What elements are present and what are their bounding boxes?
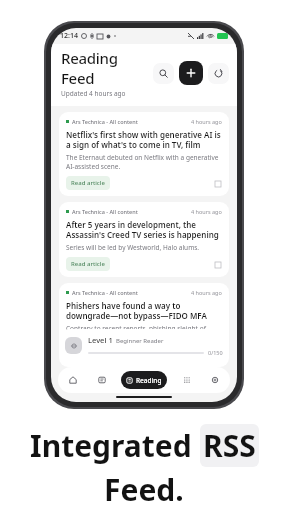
staticText: Level 1 — [88, 335, 113, 345]
staticText: 4 hours ago — [191, 208, 222, 215]
staticText: Beginner Reader — [116, 337, 164, 345]
staticText: Contrary to recent reports, phishing sle… — [66, 324, 209, 342]
button[interactable]: Bookmark — [213, 260, 222, 269]
button[interactable]: Refresh — [208, 63, 229, 84]
staticText: 12:14 — [60, 31, 78, 41]
button[interactable]: Search — [153, 63, 174, 84]
staticText: The Eternaut debuted on Netflix with a g… — [66, 153, 219, 171]
button[interactable]: Bookmark — [213, 350, 222, 359]
staticText: Reading Feed — [61, 48, 153, 88]
button[interactable]: Home — [64, 371, 82, 389]
button[interactable]: Reading — [121, 371, 167, 389]
button[interactable]: Level 1 — [59, 329, 229, 362]
button[interactable]: Add feed — [179, 61, 203, 85]
button[interactable]: Ars Technica - All content — [59, 283, 229, 367]
staticText: Netflix's first show with generative AI … — [66, 129, 222, 150]
button[interactable]: Read article — [66, 347, 110, 361]
button[interactable]: Settings — [206, 371, 224, 389]
staticText: Reading — [136, 376, 162, 385]
button[interactable]: Read article — [66, 176, 110, 190]
button[interactable]: Ars Technica - All content — [59, 202, 229, 277]
staticText: Ars Technica - All content — [72, 208, 138, 215]
staticText: Phishers have found a way to downgrade—n… — [66, 300, 222, 321]
staticText: Ars Technica - All content — [72, 289, 138, 296]
button[interactable]: Read article — [66, 257, 110, 271]
staticText: Feed. — [104, 469, 184, 510]
button[interactable]: Categories — [178, 371, 196, 389]
staticText: Read article — [71, 179, 105, 187]
staticText: Read article — [71, 260, 105, 268]
staticText: 4 hours ago — [191, 118, 222, 125]
staticText: Series will be led by Westworld, Halo al… — [66, 243, 200, 252]
staticText: RSS — [203, 425, 256, 466]
staticText: Ars Technica - All content — [72, 118, 138, 125]
button[interactable]: Bookmark — [213, 179, 222, 188]
staticText: 4 hours ago — [191, 289, 222, 296]
button[interactable]: Articles — [93, 371, 111, 389]
staticText: After 5 years in development, the Assass… — [66, 219, 222, 240]
button[interactable]: Ars Technica - All content — [59, 112, 229, 196]
staticText: Updated 4 hours ago — [61, 89, 126, 98]
staticText: Read article — [71, 350, 105, 358]
staticText: 0/150 — [208, 349, 223, 356]
staticText: Integrated — [30, 425, 200, 466]
